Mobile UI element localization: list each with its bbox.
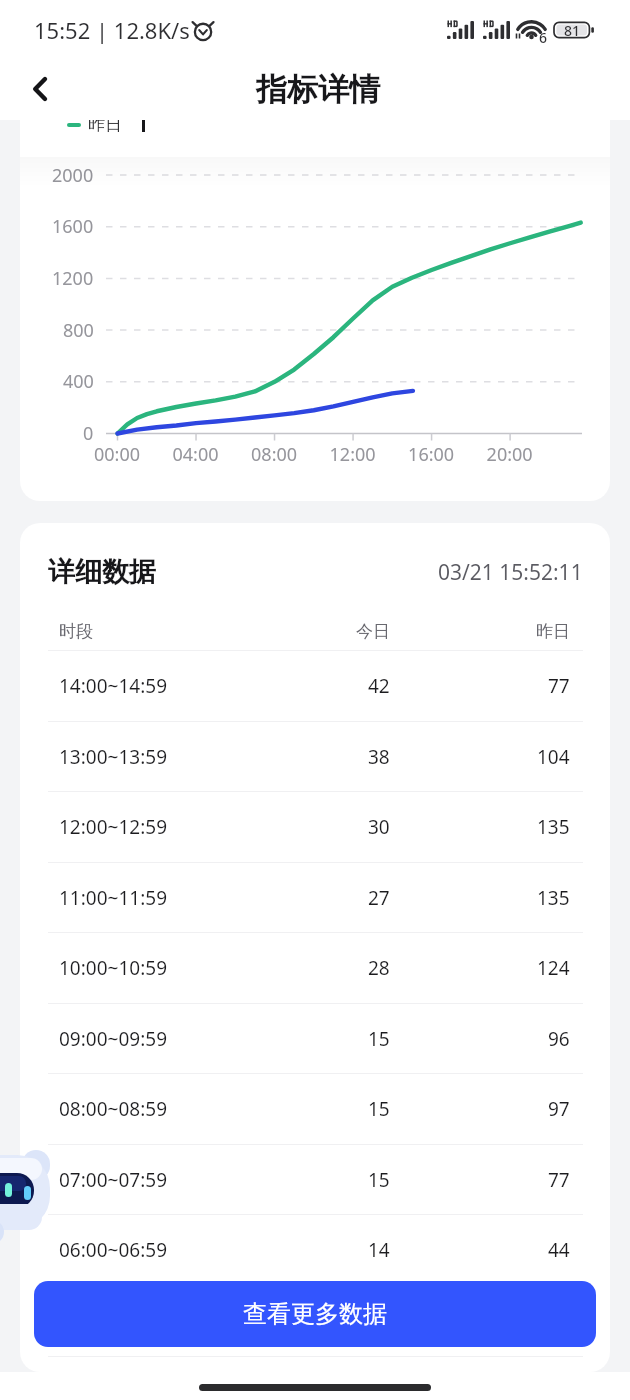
button[interactable]: 12:00~12:59 [20,792,610,862]
staticText: 昨日 [536,621,570,642]
button[interactable]: 10:00~10:59 [20,933,610,1003]
button[interactable]: 查看更多数据 [34,1281,596,1347]
button[interactable]: 11:00~11:59 [20,863,610,933]
staticText: 6 [539,28,548,47]
staticText: 15:52 | 12.8K/s [34,15,190,45]
button[interactable]: 09:00~09:59 [20,1004,610,1074]
staticText: 13:00~13:59 [59,744,167,770]
staticText: 104 [537,744,570,770]
button[interactable]: 06:00~06:59 [20,1215,610,1285]
staticText: 77 [548,673,570,699]
staticText: 指标详情 [256,70,380,109]
staticText: 30 [368,814,390,840]
staticText: 10:00~10:59 [59,955,167,981]
staticText: 38 [368,744,390,770]
staticText: 42 [368,673,390,699]
staticText: 11:00~11:59 [59,885,167,911]
staticText: 14 [368,1237,390,1263]
staticText: 08:00~08:59 [59,1096,167,1122]
staticText: 44 [548,1237,570,1263]
staticText: 今日 [356,621,390,642]
button[interactable]: 07:00~07:59 [20,1145,610,1215]
staticText: 查看更多数据 [243,1299,387,1329]
button[interactable]: 14:00~14:59 [20,651,610,721]
staticText: 135 [537,814,570,840]
staticText: 124 [537,955,570,981]
staticText: 15 [368,1026,390,1052]
staticText: 12:00~12:59 [59,814,167,840]
button[interactable]: 13:00~13:59 [20,722,610,792]
staticText: 81 [564,21,581,40]
staticText: 15 [368,1096,390,1122]
staticText: 详细数据 [48,555,156,589]
staticText: 时段 [59,621,93,642]
staticText: 28 [368,955,390,981]
staticText: 07:00~07:59 [59,1167,167,1193]
staticText: 77 [548,1167,570,1193]
staticText: 03/21 15:52:11 [438,558,583,587]
staticText: 昨日 [88,114,122,135]
button[interactable]: Back [9,58,71,120]
staticText: 97 [548,1096,570,1122]
button[interactable]: 时段 [20,613,610,650]
button[interactable]: 08:00~08:59 [20,1074,610,1144]
button[interactable]: Assistant [0,1146,56,1248]
staticText: 09:00~09:59 [59,1026,167,1052]
staticText: 15 [368,1167,390,1193]
staticText: 14:00~14:59 [59,673,167,699]
staticText: 27 [368,885,390,911]
staticText: 96 [548,1026,570,1052]
staticText: 06:00~06:59 [59,1237,167,1263]
staticText: 135 [537,885,570,911]
